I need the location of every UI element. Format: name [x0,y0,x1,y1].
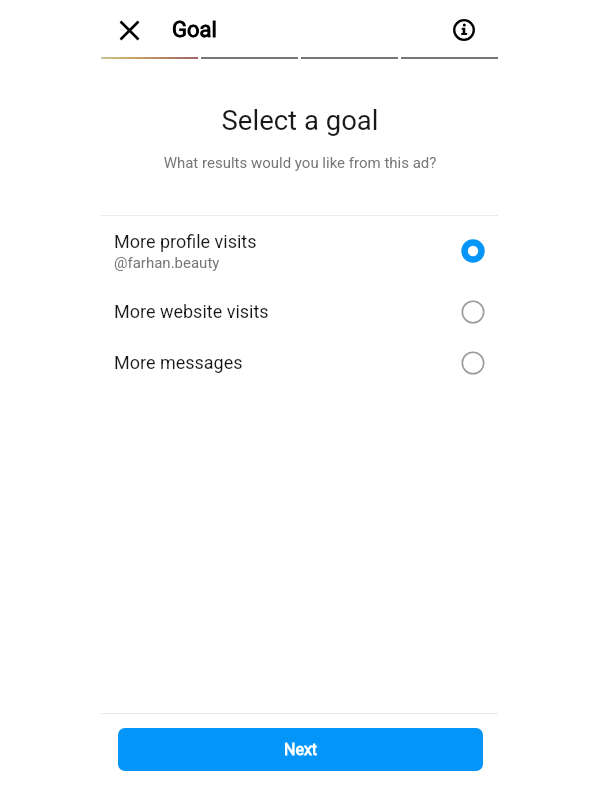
button[interactable]: Next [118,728,483,771]
button[interactable]: More profile visits [0,216,600,286]
button[interactable]: More website visits [0,286,600,337]
staticText: More profile visits [114,231,257,252]
staticText: More messages [114,352,243,373]
staticText: Next [284,740,318,759]
staticText: More website visits [114,301,269,322]
button[interactable]: Close [111,12,148,49]
staticText: Goal [172,17,217,43]
button[interactable]: Information [445,11,482,48]
staticText: Select a goal [0,104,600,136]
staticText: Goal [172,17,217,43]
staticText: @farhan.beauty [114,254,220,272]
button[interactable]: More messages [0,337,600,388]
staticText: What results would you like from this ad… [0,154,600,172]
